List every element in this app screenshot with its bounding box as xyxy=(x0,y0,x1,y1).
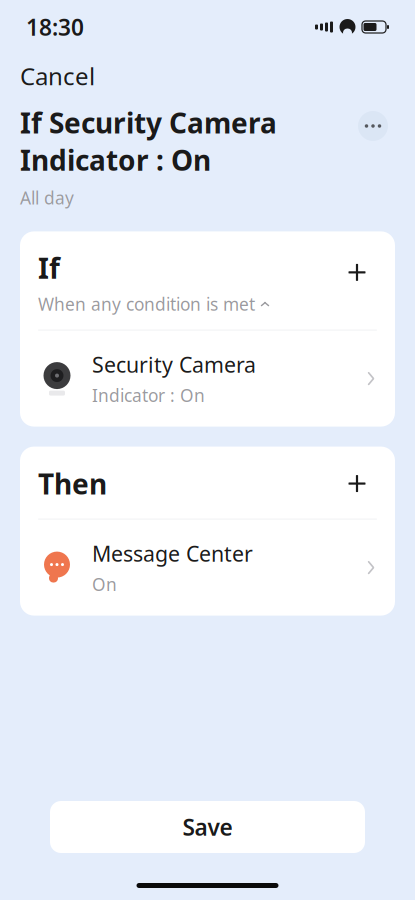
staticText: If xyxy=(38,249,60,287)
button[interactable]: Security Camera xyxy=(20,331,395,427)
button[interactable]: Save xyxy=(50,801,365,853)
button[interactable]: Add condition xyxy=(337,249,377,295)
staticText: Security Camera xyxy=(92,350,256,379)
button[interactable]: When any condition is met xyxy=(38,293,270,316)
staticText: Indicator : On xyxy=(92,384,205,407)
button[interactable]: More options xyxy=(351,104,395,148)
staticText: Save xyxy=(182,812,232,842)
staticText: On xyxy=(92,573,117,596)
staticText: If Security Camera xyxy=(20,104,277,141)
staticText: All day xyxy=(20,186,74,209)
staticText: Cancel xyxy=(20,60,95,92)
staticText: Then xyxy=(38,465,107,502)
staticText: Indicator : On xyxy=(20,141,211,178)
button[interactable]: Add action xyxy=(337,461,377,507)
staticText: Message Center xyxy=(92,539,253,568)
button[interactable]: Message Center xyxy=(20,520,395,616)
button[interactable]: Cancel xyxy=(18,52,97,100)
staticText: When any condition is met xyxy=(38,293,255,316)
staticText: 18:30 xyxy=(26,12,84,42)
